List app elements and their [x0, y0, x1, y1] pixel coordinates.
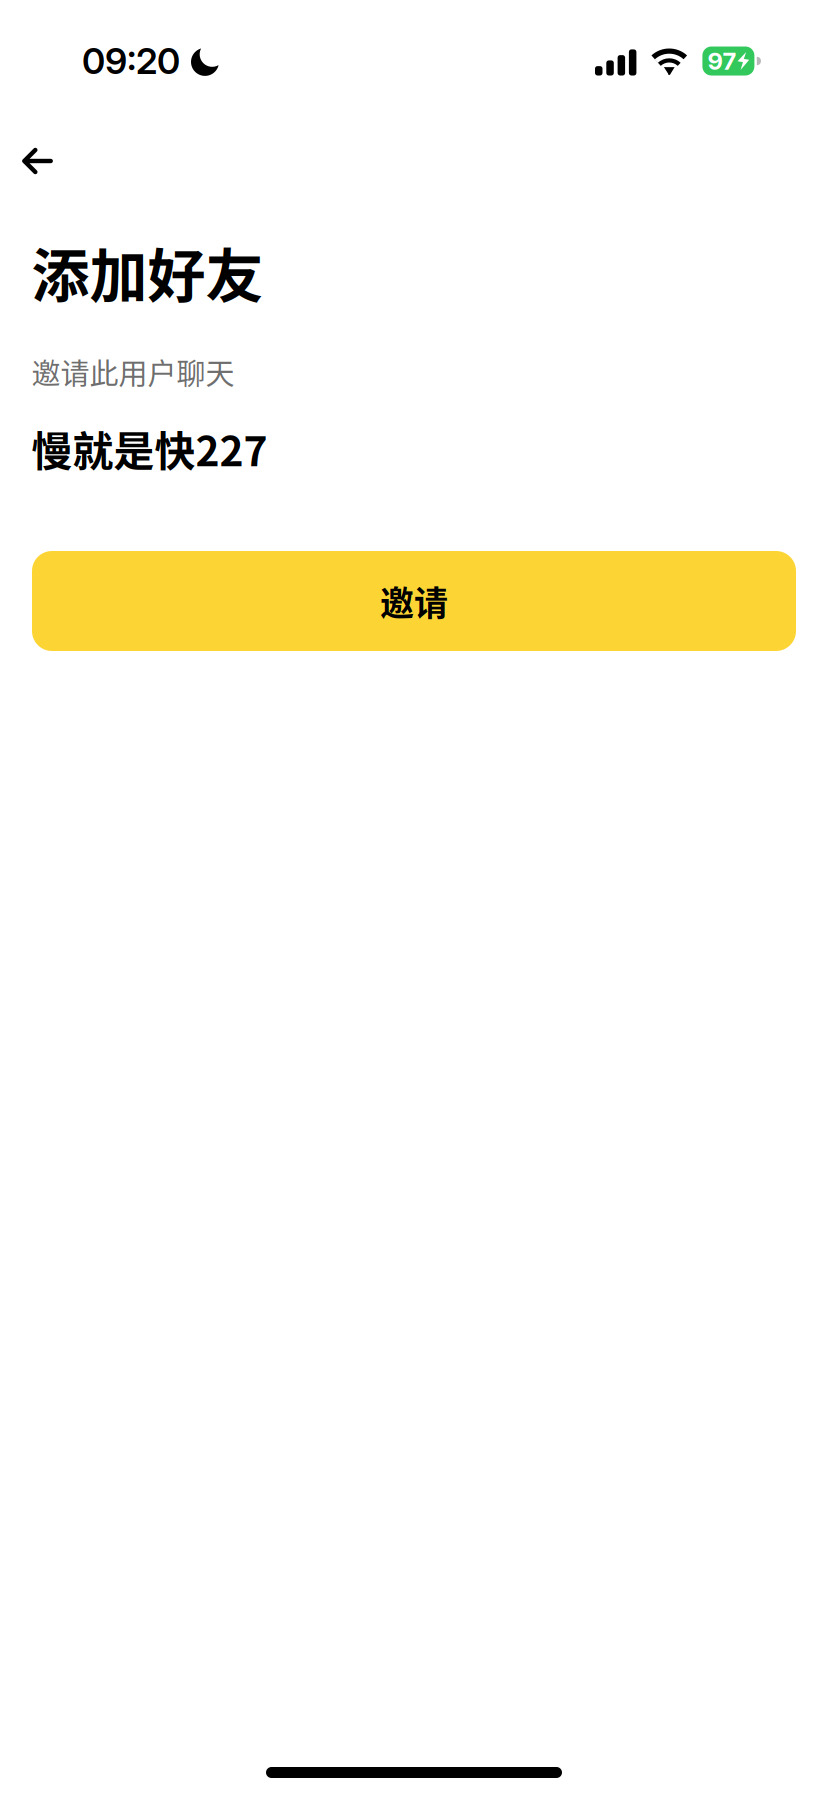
staticText: 慢就是快227 — [31, 419, 267, 478]
button[interactable]: Back — [0, 121, 96, 201]
staticText: 添加好友 — [31, 230, 263, 314]
staticText: 97 — [707, 46, 736, 75]
staticText: 09:20 — [82, 39, 180, 83]
staticText: 邀请 — [380, 576, 448, 626]
staticText: 邀请此用户聊天 — [31, 351, 234, 393]
button[interactable]: 邀请 — [32, 551, 796, 651]
